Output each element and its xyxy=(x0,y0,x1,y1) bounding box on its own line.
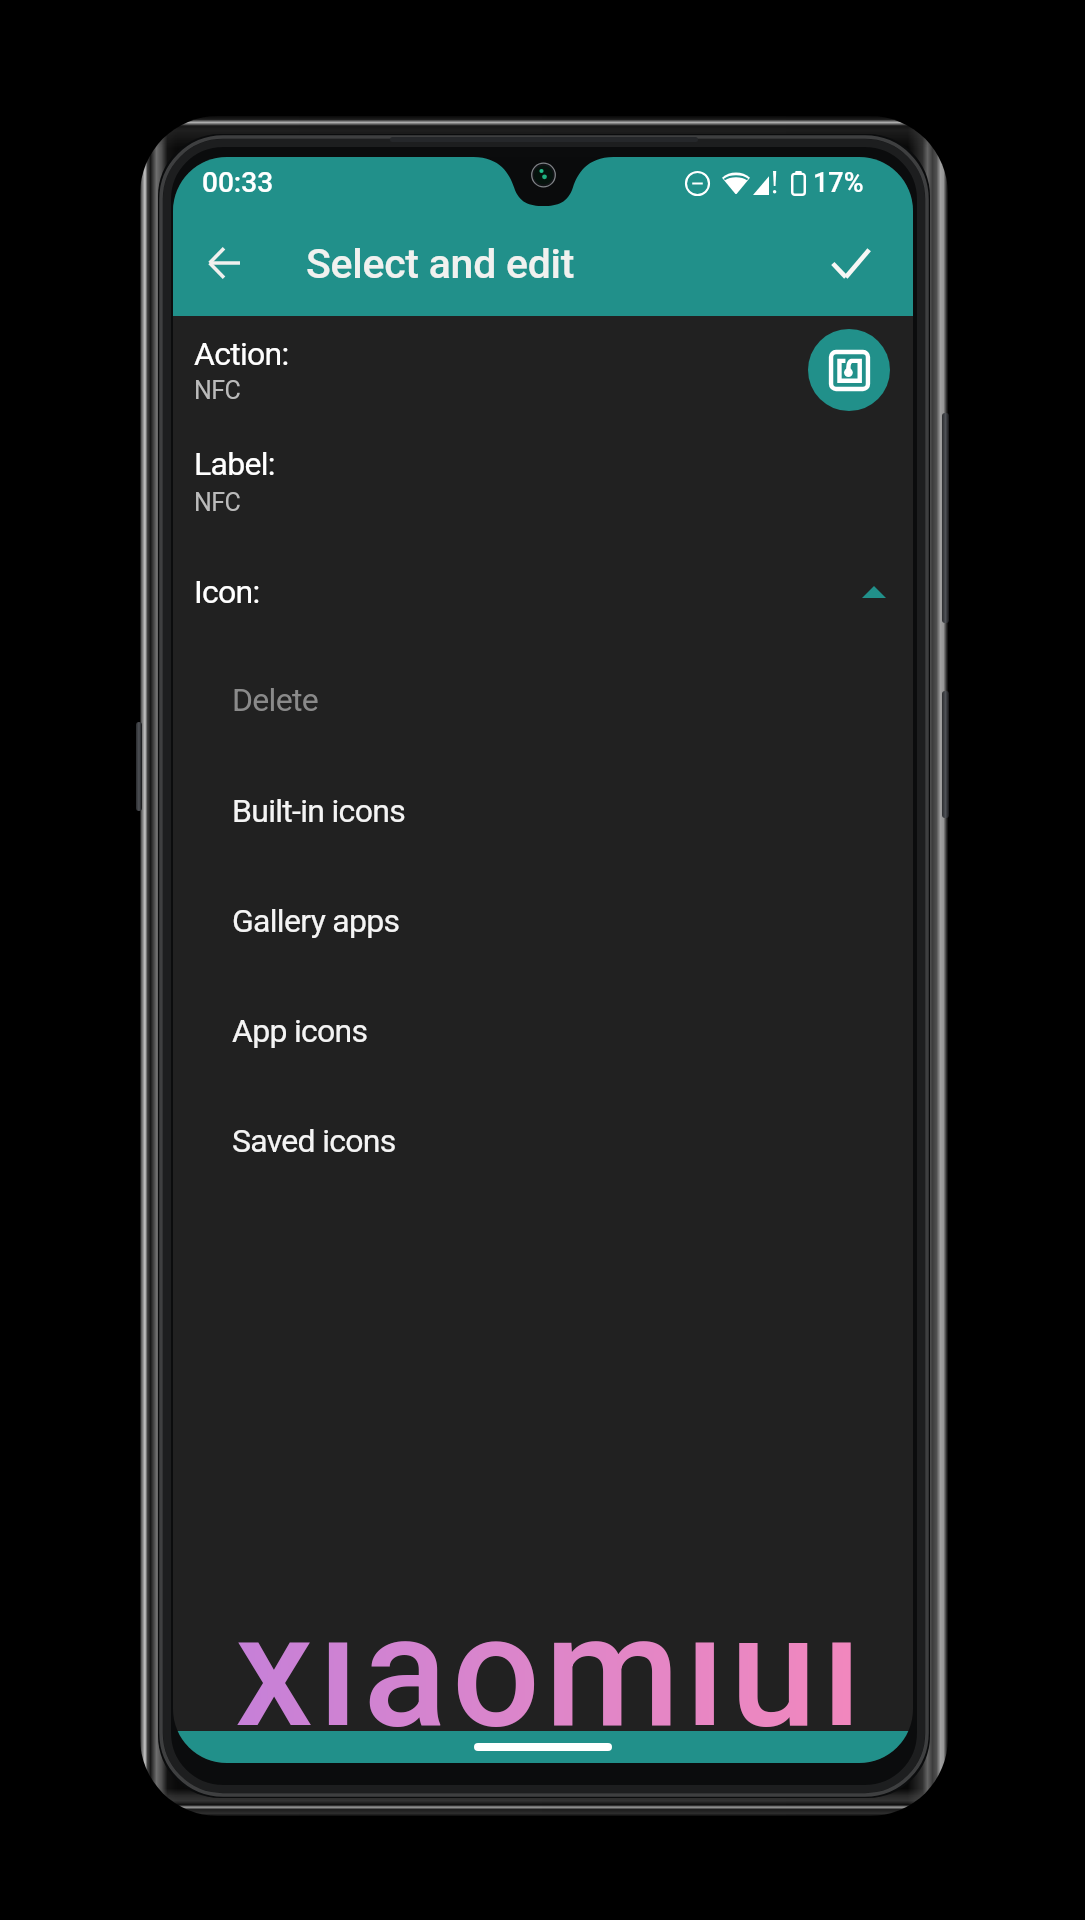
staticText: xıaomıuı xyxy=(235,1581,867,1763)
staticText: NFC xyxy=(194,488,241,517)
staticText: Delete xyxy=(232,681,318,719)
staticText: Action: xyxy=(194,335,289,373)
staticText: 00:33 xyxy=(202,166,274,199)
button[interactable]: Delete xyxy=(173,645,913,755)
button[interactable]: Confirm xyxy=(813,225,889,301)
staticText: 17% xyxy=(813,167,864,199)
button[interactable] xyxy=(173,321,913,406)
button[interactable]: Gallery apps xyxy=(173,866,913,976)
staticText: Gallery apps xyxy=(232,902,400,940)
staticText: Saved icons xyxy=(232,1122,396,1160)
button[interactable] xyxy=(173,431,913,516)
button[interactable]: NFC action icon xyxy=(808,329,890,411)
staticText: Select and edit xyxy=(306,240,575,288)
staticText: Label: xyxy=(194,445,275,483)
button[interactable]: App icons xyxy=(173,976,913,1086)
button[interactable]: Saved icons xyxy=(173,1086,913,1196)
staticText: Built-in icons xyxy=(232,792,405,830)
staticText: NFC xyxy=(194,376,241,405)
button[interactable]: Built-in icons xyxy=(173,756,913,866)
staticText: App icons xyxy=(232,1012,368,1050)
button[interactable]: Back xyxy=(186,225,262,301)
button[interactable]: Icon: xyxy=(173,560,913,624)
staticText: Icon: xyxy=(194,573,260,611)
